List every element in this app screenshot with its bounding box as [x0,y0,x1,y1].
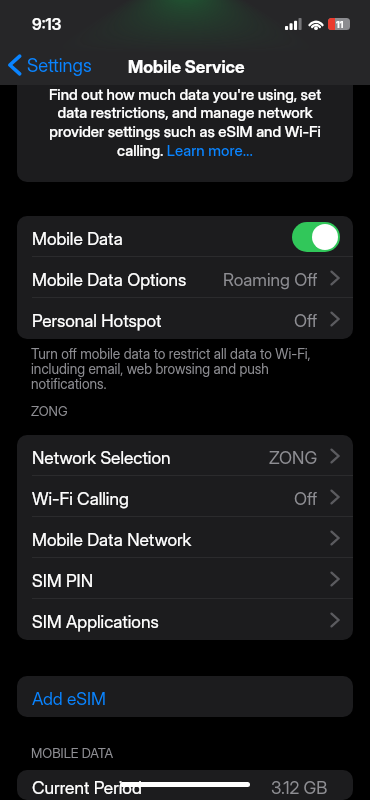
staticText: Find out how much data you're using, set… [21,85,349,159]
button[interactable]: SIM PIN [17,558,353,599]
staticText: ZONG [269,447,318,468]
staticText: 3.12 GB [271,777,328,798]
staticText: Add eSIM [32,688,106,709]
button[interactable]: Settings [0,50,102,80]
staticText: Mobile Service [128,57,245,78]
staticText: Mobile Data Network [32,529,192,550]
button[interactable]: Mobile Data toggle [292,222,340,252]
staticText: ZONG [31,403,68,419]
button[interactable]: Current Period [17,770,353,800]
staticText: Off [294,488,318,509]
staticText: Current Period [32,777,142,798]
staticText: Network Selection [32,447,171,468]
staticText: Off [294,310,318,331]
staticText: 9:13 [32,14,62,33]
button[interactable]: Wi-Fi Calling [17,476,353,517]
staticText: Wi-Fi Calling [32,488,129,509]
staticText: Mobile Data [32,228,123,249]
staticText: Roaming Off [223,269,318,290]
button[interactable]: Mobile Data Options [17,257,353,298]
staticText: SIM PIN [32,570,94,591]
button[interactable]: Mobile Data [17,216,353,257]
staticText: SIM Applications [32,611,159,632]
staticText: Settings [27,54,92,76]
staticText: Personal Hotspot [32,310,162,331]
staticText: MOBILE DATA [31,745,114,761]
staticText: Turn off mobile data to restrict all dat… [31,346,311,392]
button[interactable]: Network Selection [17,435,353,476]
staticText: Mobile Data Options [32,269,187,290]
button[interactable]: SIM Applications [17,599,353,640]
button[interactable]: Personal Hotspot [17,298,353,339]
button[interactable]: Mobile Data Network [17,517,353,558]
button[interactable]: Add eSIM [17,676,353,717]
staticText: 11 [336,19,344,30]
